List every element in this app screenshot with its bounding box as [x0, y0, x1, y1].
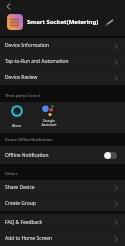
staticText: Device Review	[5, 74, 38, 81]
button[interactable]: Alexa	[6, 102, 28, 133]
staticText: Third-party Control	[5, 93, 40, 98]
staticText: Tap-to-Run and Automation	[5, 58, 69, 65]
button[interactable]: Google Assistant	[38, 102, 60, 133]
button[interactable]	[7, 14, 23, 30]
staticText: Smart Socket(Metering)	[27, 18, 99, 26]
staticText: Others	[5, 171, 18, 176]
button[interactable]: Share Device	[0, 180, 125, 195]
staticText: Add to Home Screen	[5, 235, 53, 242]
button[interactable]	[0, 0, 16, 13]
button[interactable]	[104, 17, 114, 27]
staticText: Share Device	[5, 184, 35, 191]
staticText: Offline Notification	[5, 152, 49, 159]
staticText: Device Information	[5, 42, 50, 49]
staticText: Google Assistant	[41, 118, 57, 128]
button[interactable]: Device Review	[0, 70, 125, 85]
button[interactable]: Offline Notification	[0, 146, 125, 164]
button[interactable]: FAQ & Feedback	[0, 214, 125, 230]
button[interactable]: Device Information	[0, 38, 125, 53]
button[interactable]: Create Group	[0, 196, 125, 211]
button[interactable]: Tap-to-Run and Automation	[0, 54, 125, 69]
button[interactable]: Add to Home Screen	[0, 231, 125, 246]
staticText: Device Offline Notification	[5, 137, 53, 142]
staticText: Create Group	[5, 200, 36, 207]
staticText: Alexa	[12, 123, 22, 128]
staticText: FAQ & Feedback	[5, 219, 43, 226]
